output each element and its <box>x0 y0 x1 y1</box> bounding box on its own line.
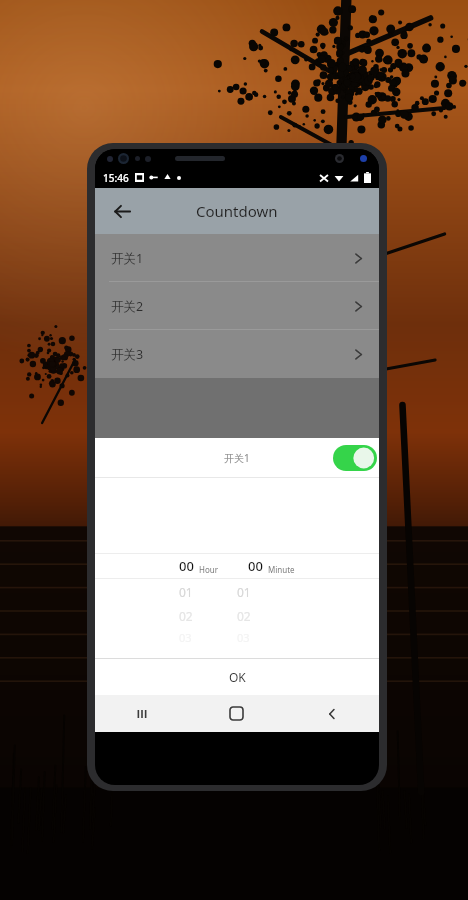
button[interactable]: Home <box>189 695 284 732</box>
staticText: 00 <box>179 557 194 575</box>
button[interactable]: 开关2 <box>95 282 379 330</box>
button[interactable]: Toggle switch 1 <box>333 445 377 471</box>
staticText: 开关1 <box>224 451 250 465</box>
staticText: 01 <box>179 584 193 600</box>
staticText: 00 <box>248 557 263 575</box>
button[interactable]: 开关1 <box>95 234 379 282</box>
staticText: 01 <box>237 584 251 600</box>
button[interactable]: Recents <box>95 695 189 732</box>
staticText: 03 <box>237 630 250 645</box>
staticText: Hour <box>199 564 219 575</box>
button[interactable]: Back <box>105 194 139 228</box>
button[interactable]: OK <box>95 659 379 695</box>
staticText: OK <box>229 669 246 685</box>
staticText: 15:46 <box>103 171 129 185</box>
staticText: 开关1 <box>111 250 144 267</box>
staticText: 开关2 <box>111 298 144 315</box>
staticText: 03 <box>179 630 192 645</box>
button[interactable]: 开关3 <box>95 330 379 378</box>
staticText: 02 <box>179 608 193 624</box>
staticText: 02 <box>237 608 251 624</box>
staticText: Minute <box>268 564 295 575</box>
button[interactable]: Back <box>284 695 379 732</box>
staticText: 开关3 <box>111 346 144 363</box>
staticText: Countdown <box>196 201 278 221</box>
